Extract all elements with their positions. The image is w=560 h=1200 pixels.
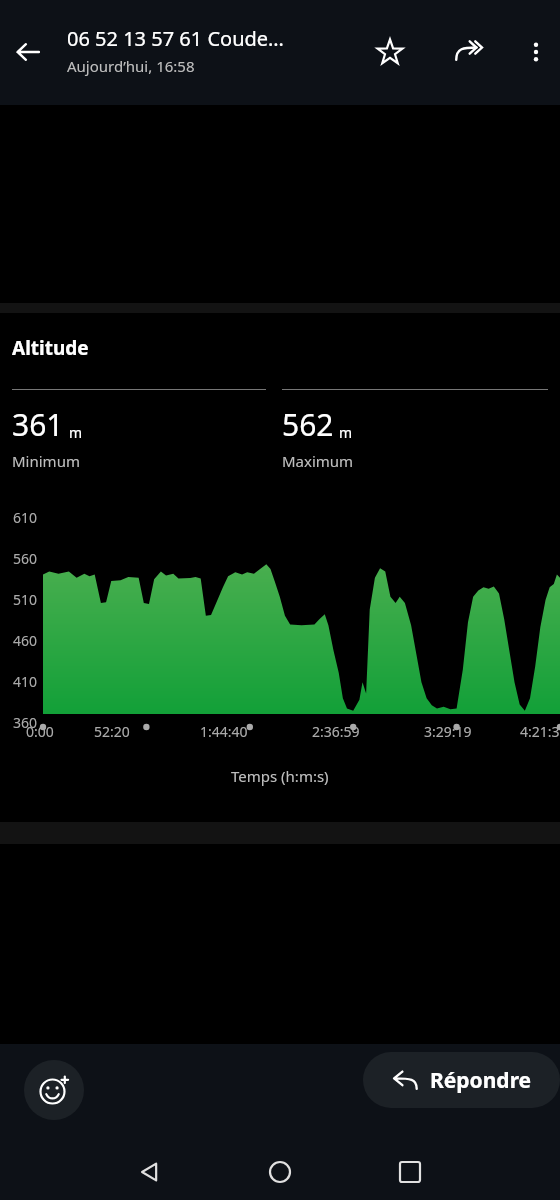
button[interactable]: Répondre [363,1052,560,1108]
staticText: 360 [13,713,38,729]
button[interactable]: Back [6,30,50,74]
staticText: 361 [12,404,64,445]
staticText: 1:44:40 [200,722,248,741]
staticText: m [69,423,83,442]
staticText: 0:00 [26,722,54,741]
staticText: 2:36:59 [312,722,360,741]
staticText: Aujourd’hui, 16:58 [67,56,195,76]
staticText: 4:21:3 [520,722,560,741]
staticText: 562 [282,404,334,445]
staticText: 06 52 13 57 61 Coude… [67,25,284,52]
staticText: 460 [13,631,38,650]
button[interactable]: Back [130,1152,170,1192]
staticText: 52:20 [94,722,130,741]
staticText: 610 [13,508,38,527]
staticText: Maximum [282,451,354,471]
staticText: Répondre [430,1066,532,1095]
staticText: Temps (h:m:s) [231,766,329,786]
staticText: m [339,423,353,442]
staticText: 510 [13,590,38,609]
button[interactable]: Emoji [24,1060,84,1120]
staticText: Minimum [12,451,80,471]
button[interactable]: Favourite [368,30,412,74]
button[interactable]: Forward [446,30,490,74]
staticText: 560 [13,549,38,568]
staticText: 410 [13,672,38,691]
staticText: Altitude [12,335,89,361]
button[interactable]: More options [514,30,558,74]
staticText: 3:29:19 [424,722,472,741]
button[interactable]: Home [260,1152,300,1192]
button[interactable]: Recent apps [390,1152,430,1192]
